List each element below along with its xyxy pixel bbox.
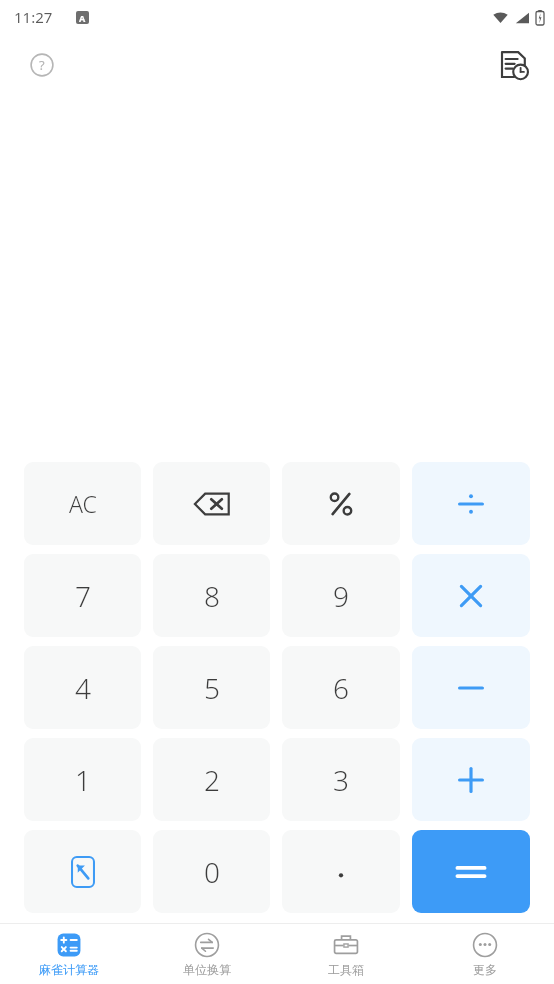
button[interactable]: 2 xyxy=(153,738,270,821)
button[interactable]: AC xyxy=(24,462,141,545)
staticText: ? xyxy=(39,56,45,74)
button[interactable]: 单位换算 xyxy=(138,932,276,977)
staticText: 2 xyxy=(204,761,220,799)
button[interactable]: Backspace xyxy=(153,462,270,545)
button[interactable]: 3 xyxy=(282,738,400,821)
button[interactable]: Help xyxy=(22,45,62,85)
staticText: 更多 xyxy=(473,962,497,977)
button[interactable]: Expand xyxy=(24,830,141,913)
button[interactable] xyxy=(412,554,530,637)
button[interactable]: 麻雀计算器 xyxy=(0,932,138,977)
button[interactable]: 1 xyxy=(24,738,141,821)
staticText: 11:27 xyxy=(14,7,53,27)
button[interactable] xyxy=(412,462,530,545)
staticText: A xyxy=(79,12,86,24)
staticText: 麻雀计算器 xyxy=(39,962,99,977)
button[interactable] xyxy=(282,830,400,913)
staticText: AC xyxy=(69,488,97,519)
button[interactable]: 9 xyxy=(282,554,400,637)
button[interactable]: 0 xyxy=(153,830,270,913)
staticText: 工具箱 xyxy=(328,962,364,977)
button[interactable]: 6 xyxy=(282,646,400,729)
staticText: 3 xyxy=(333,761,349,799)
staticText: 7 xyxy=(75,577,91,615)
staticText: 4 xyxy=(75,669,91,707)
staticText: 9 xyxy=(333,577,349,615)
staticText: 8 xyxy=(204,577,220,615)
staticText: 0 xyxy=(204,853,220,891)
button[interactable]: 4 xyxy=(24,646,141,729)
button[interactable] xyxy=(412,830,530,913)
button[interactable] xyxy=(282,462,400,545)
button[interactable] xyxy=(412,646,530,729)
button[interactable]: 更多 xyxy=(415,932,554,977)
staticText: 1 xyxy=(75,761,91,799)
button[interactable]: History xyxy=(492,43,536,87)
staticText: 单位换算 xyxy=(183,962,231,977)
staticText: 5 xyxy=(204,669,220,707)
button[interactable] xyxy=(412,738,530,821)
button[interactable]: 8 xyxy=(153,554,270,637)
button[interactable]: 工具箱 xyxy=(276,932,415,977)
staticText: 6 xyxy=(333,669,349,707)
button[interactable]: 7 xyxy=(24,554,141,637)
button[interactable]: 5 xyxy=(153,646,270,729)
